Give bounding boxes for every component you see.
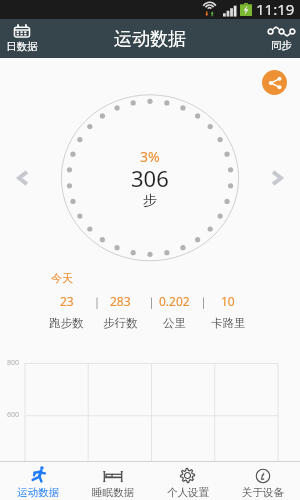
staticText: 3%	[140, 147, 160, 166]
button[interactable]: 睡眠数据	[75, 462, 150, 500]
button[interactable]: Next day	[266, 167, 288, 189]
staticText: 步行数	[103, 316, 138, 330]
staticText: 个人设置	[167, 486, 209, 499]
button[interactable]: Previous day	[12, 167, 34, 189]
staticText: 步	[143, 192, 157, 210]
staticText: 运动数据	[114, 28, 186, 51]
button[interactable]: 个人设置	[150, 462, 225, 500]
button[interactable]: 日数据	[1, 19, 43, 58]
button[interactable]: 同步	[263, 19, 300, 58]
staticText: 同步	[271, 39, 292, 52]
staticText: 11:19	[256, 0, 295, 18]
button[interactable]: 运动数据	[0, 462, 75, 500]
staticText: 卡路里	[211, 316, 246, 330]
button[interactable]: 23	[40, 293, 93, 330]
staticText: 睡眠数据	[92, 486, 134, 499]
staticText: 600	[7, 410, 20, 420]
staticText: 运动数据	[17, 486, 59, 499]
staticText: 10	[221, 293, 235, 309]
staticText: 今天	[51, 271, 73, 285]
staticText: 跑步数	[49, 316, 84, 330]
button[interactable]: Share	[262, 70, 287, 95]
staticText: 306	[131, 163, 169, 193]
button[interactable]: 关于设备	[225, 462, 300, 500]
staticText: 0.202	[159, 293, 190, 309]
button[interactable]: 0.202	[147, 293, 201, 330]
staticText: 23	[60, 293, 74, 309]
button[interactable]: 283	[93, 293, 147, 330]
staticText: 283	[110, 293, 131, 309]
staticText: 关于设备	[242, 486, 284, 499]
staticText: 日数据	[6, 40, 38, 53]
staticText: 公里	[163, 316, 186, 330]
button[interactable]: 10	[201, 293, 255, 330]
staticText: 800	[7, 358, 20, 368]
